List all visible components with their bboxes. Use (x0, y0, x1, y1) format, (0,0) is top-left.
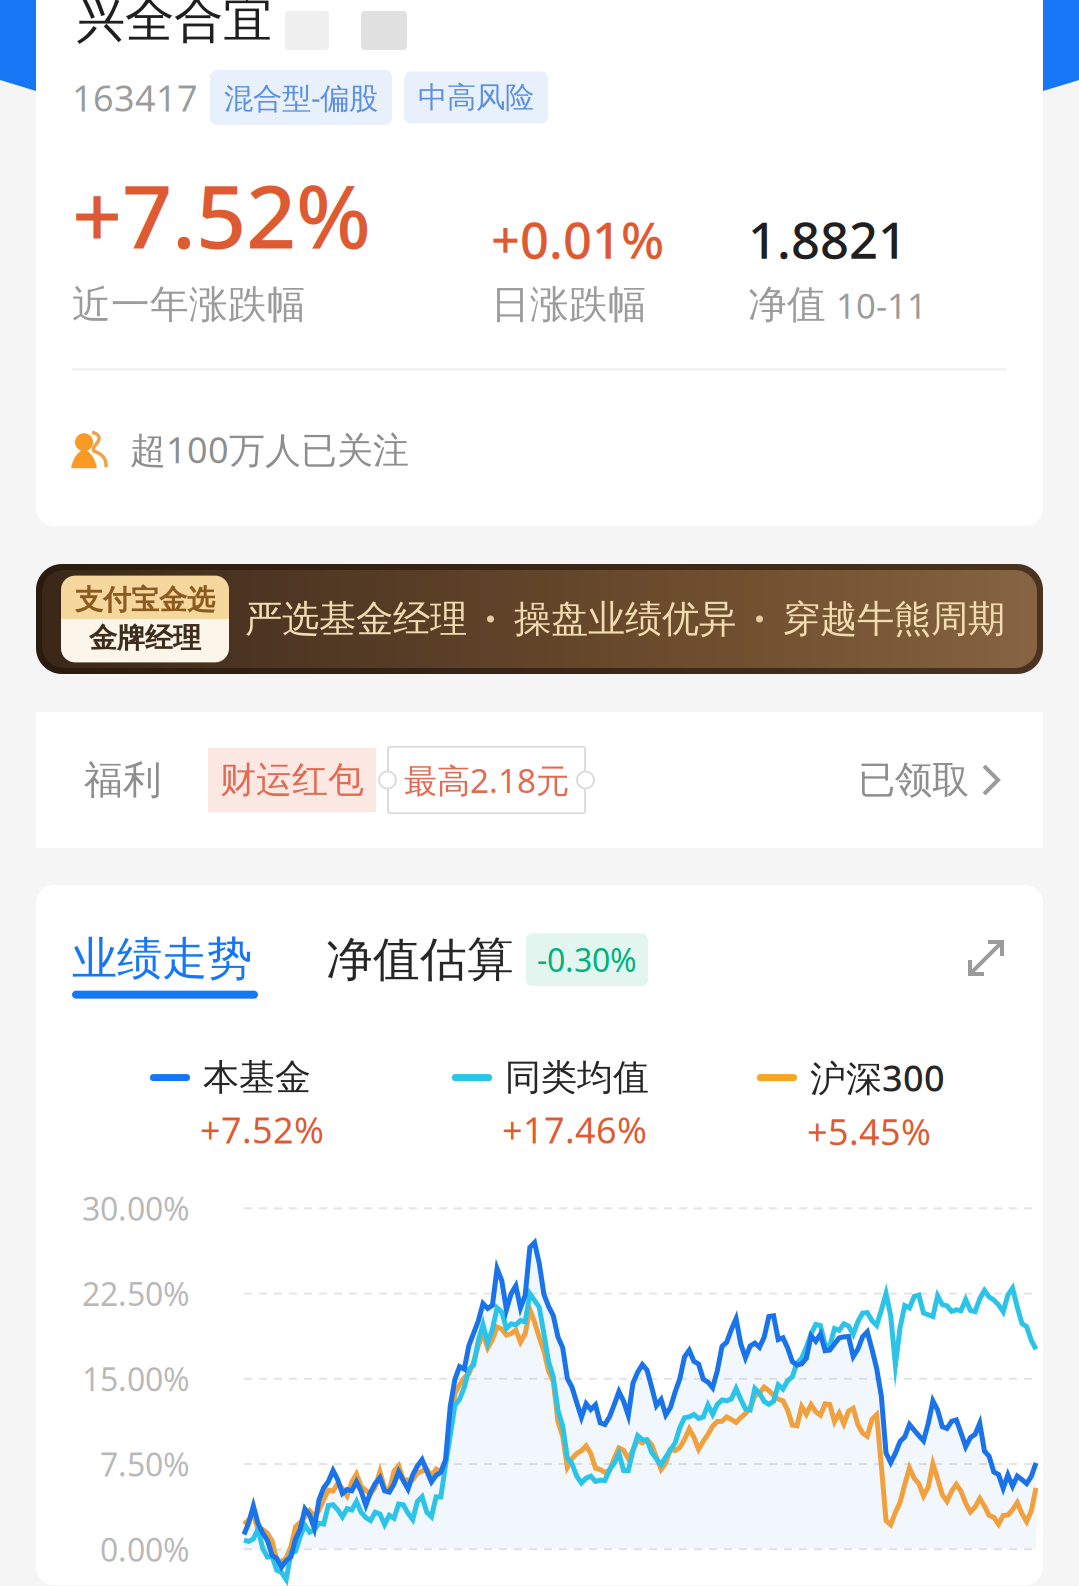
button[interactable]: 业绩走势 (36, 931, 258, 999)
staticText: -0.30% (537, 938, 637, 981)
staticText: 最高2.18元 (404, 758, 569, 802)
staticText: +7.52% (200, 1106, 324, 1153)
staticText: 金牌经理 (89, 621, 201, 655)
staticText: 同类均值 (505, 1055, 649, 1100)
staticText: 日涨跌幅 (491, 281, 647, 328)
staticText: 本基金 (203, 1055, 311, 1100)
staticText: 10-11 (836, 282, 927, 328)
staticText: 7.50% (100, 1443, 190, 1485)
staticText: 严选基金经理 (245, 596, 467, 642)
staticText: 净值 (748, 281, 826, 328)
staticText: +5.45% (807, 1107, 931, 1155)
staticText: 业绩走势 (72, 931, 252, 987)
staticText: 操盘业绩优异 (514, 596, 736, 642)
staticText: +17.46% (502, 1106, 647, 1153)
staticText: 净值估算 (326, 931, 514, 988)
staticText: 22.50% (82, 1272, 190, 1315)
staticText: 超100万人已关注 (130, 425, 409, 473)
button[interactable]: Expand chart (968, 931, 1043, 976)
staticText: +0.01% (491, 205, 664, 273)
staticText: 混合型-偏股 (224, 78, 378, 117)
button[interactable]: 福利 (36, 712, 1043, 848)
staticText: 财运红包 (220, 758, 364, 802)
staticText: 中高风险 (418, 79, 534, 115)
staticText: 穿越牛熊周期 (783, 596, 1005, 642)
staticText: 近一年涨跌幅 (72, 281, 306, 328)
staticText: 1.8821 (748, 205, 907, 273)
staticText: 0.00% (100, 1528, 190, 1570)
staticText: +7.52% (72, 156, 371, 273)
staticText: 15.00% (82, 1357, 190, 1400)
staticText: 已领取 (858, 757, 969, 803)
staticText: 沪深300 (810, 1054, 945, 1101)
staticText: 支付宝金选 (75, 583, 215, 617)
button[interactable]: 净值估算 (258, 931, 648, 988)
staticText: 163417 (72, 74, 198, 121)
staticText: 兴全合宜 (76, 0, 272, 50)
staticText: 福利 (84, 756, 162, 804)
staticText: 30.00% (82, 1187, 190, 1229)
